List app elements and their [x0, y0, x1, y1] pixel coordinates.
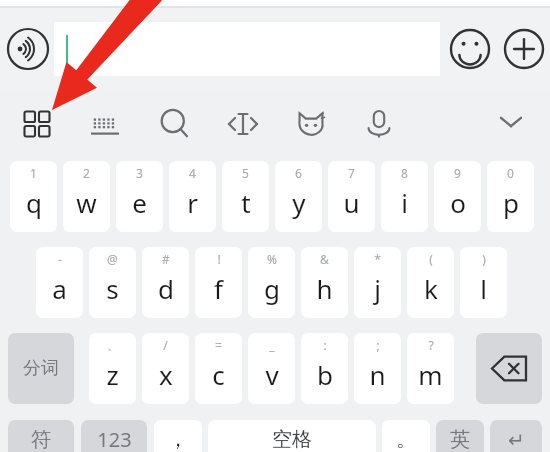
staticText: f: [214, 271, 223, 306]
button[interactable]: Voice: [356, 102, 402, 146]
button[interactable]: [476, 333, 542, 404]
button[interactable]: 4: [169, 161, 216, 232]
staticText: 1: [30, 165, 37, 181]
button[interactable]: 分词: [8, 333, 74, 404]
button[interactable]: Search: [152, 102, 198, 146]
staticText: i: [401, 185, 408, 220]
staticText: 空格: [272, 427, 312, 452]
button[interactable]: :: [301, 333, 348, 404]
staticText: x: [159, 357, 173, 392]
staticText: 3: [136, 165, 143, 181]
staticText: ): [482, 251, 486, 267]
staticText: 7: [348, 165, 355, 181]
button[interactable]: [54, 22, 440, 76]
staticText: #: [162, 251, 170, 267]
staticText: t: [241, 185, 251, 220]
staticText: r: [187, 185, 198, 220]
staticText: 英: [450, 427, 470, 452]
button[interactable]: Keyboard: [82, 102, 128, 146]
button[interactable]: =: [195, 333, 242, 404]
staticText: -: [58, 251, 62, 267]
staticText: 分词: [23, 357, 59, 380]
staticText: 0: [507, 165, 514, 181]
button[interactable]: Keyboard layouts: [14, 102, 60, 146]
staticText: 6: [295, 165, 302, 181]
button[interactable]: ): [460, 247, 507, 318]
button[interactable]: ?: [407, 333, 454, 404]
staticText: ↵: [508, 428, 525, 451]
button[interactable]: Stickers: [288, 102, 334, 146]
button[interactable]: 8: [381, 161, 428, 232]
staticText: j: [374, 271, 381, 306]
button[interactable]: (: [407, 247, 454, 318]
button[interactable]: _: [248, 333, 295, 404]
button[interactable]: 6: [275, 161, 322, 232]
staticText: d: [158, 271, 174, 306]
staticText: b: [317, 357, 333, 392]
staticText: =: [215, 337, 222, 353]
staticText: y: [292, 185, 306, 220]
button[interactable]: 。: [382, 420, 430, 452]
staticText: z: [106, 357, 119, 392]
staticText: /: [163, 337, 168, 353]
staticText: (: [429, 251, 433, 267]
button[interactable]: More: [504, 27, 548, 71]
button[interactable]: %: [248, 247, 295, 318]
staticText: q: [26, 185, 42, 220]
button[interactable]: 3: [116, 161, 163, 232]
staticText: h: [316, 271, 333, 306]
button[interactable]: ，: [154, 420, 202, 452]
staticText: !: [217, 251, 221, 267]
button[interactable]: !: [195, 247, 242, 318]
button[interactable]: ;: [354, 333, 401, 404]
staticText: ;: [376, 337, 380, 353]
staticText: 4: [189, 165, 196, 181]
button[interactable]: 0: [487, 161, 534, 232]
staticText: l: [480, 271, 487, 306]
button[interactable]: 123: [81, 420, 147, 452]
button[interactable]: Voice input: [6, 27, 50, 71]
button[interactable]: 符: [8, 420, 74, 452]
button[interactable]: -: [36, 247, 83, 318]
staticText: 2: [83, 165, 90, 181]
staticText: &: [320, 251, 329, 267]
button[interactable]: 7: [328, 161, 375, 232]
staticText: o: [450, 185, 466, 220]
button[interactable]: 9: [434, 161, 481, 232]
button[interactable]: Emoji: [448, 27, 492, 71]
button[interactable]: ↵: [490, 420, 542, 452]
button[interactable]: #: [142, 247, 189, 318]
staticText: v: [265, 357, 279, 392]
button[interactable]: 1: [10, 161, 57, 232]
staticText: ，: [168, 427, 188, 452]
staticText: u: [343, 185, 360, 220]
staticText: 123: [97, 426, 132, 452]
staticText: 符: [31, 427, 51, 452]
button[interactable]: /: [142, 333, 189, 404]
button[interactable]: Move cursor: [220, 102, 266, 146]
staticText: e: [132, 185, 147, 220]
button[interactable]: Hide keyboard: [488, 102, 534, 146]
staticText: m: [418, 357, 443, 392]
staticText: s: [106, 271, 119, 306]
staticText: 9: [454, 165, 461, 181]
staticText: *: [374, 251, 381, 267]
button[interactable]: *: [354, 247, 401, 318]
staticText: g: [264, 271, 280, 306]
button[interactable]: 5: [222, 161, 269, 232]
button[interactable]: 空格: [208, 420, 376, 452]
staticText: p: [503, 185, 519, 220]
staticText: :: [323, 337, 327, 353]
button[interactable]: @: [89, 247, 136, 318]
staticText: c: [212, 357, 225, 392]
button[interactable]: 英: [436, 420, 484, 452]
staticText: n: [369, 357, 386, 392]
button[interactable]: 、: [89, 333, 136, 404]
staticText: 、: [107, 337, 119, 352]
button[interactable]: &: [301, 247, 348, 318]
button[interactable]: 2: [63, 161, 110, 232]
staticText: 。: [396, 427, 416, 452]
staticText: 5: [242, 165, 249, 181]
staticText: w: [76, 185, 97, 220]
staticText: _: [269, 337, 275, 353]
